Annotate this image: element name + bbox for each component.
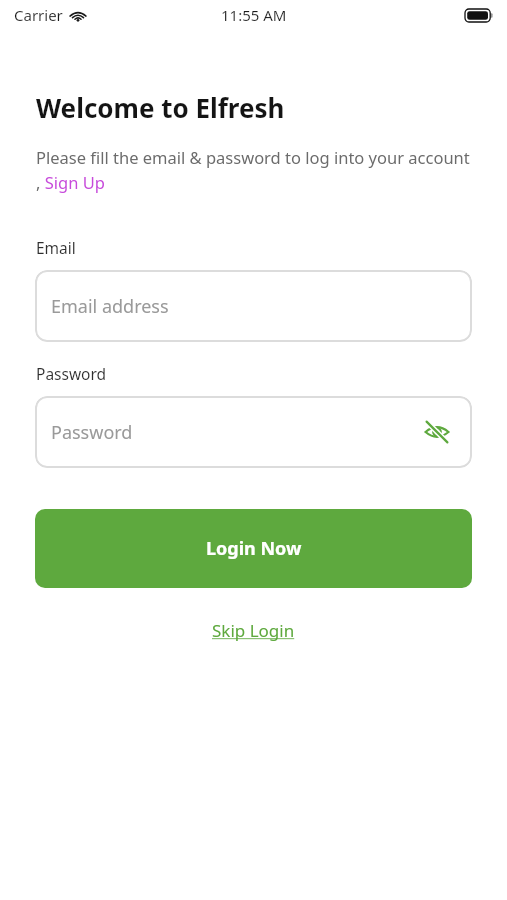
staticText: Welcome to Elfresh <box>36 90 285 125</box>
staticText: Email address <box>51 294 169 319</box>
button[interactable]: Email address <box>35 270 472 342</box>
button[interactable]: Password <box>35 396 472 468</box>
staticText: Login Now <box>206 536 302 561</box>
staticText: Please fill the email & password to log … <box>36 146 473 193</box>
staticText: Password <box>51 420 133 445</box>
staticText: 11:55 AM <box>221 5 287 25</box>
button[interactable]: Login Now <box>35 509 472 588</box>
button[interactable]: Skip Login <box>204 615 303 646</box>
staticText: Password <box>36 363 107 384</box>
staticText: Skip Login <box>212 619 295 642</box>
button[interactable]: Show password <box>420 415 454 449</box>
staticText: Carrier <box>14 5 63 25</box>
staticText: Email <box>36 237 76 258</box>
